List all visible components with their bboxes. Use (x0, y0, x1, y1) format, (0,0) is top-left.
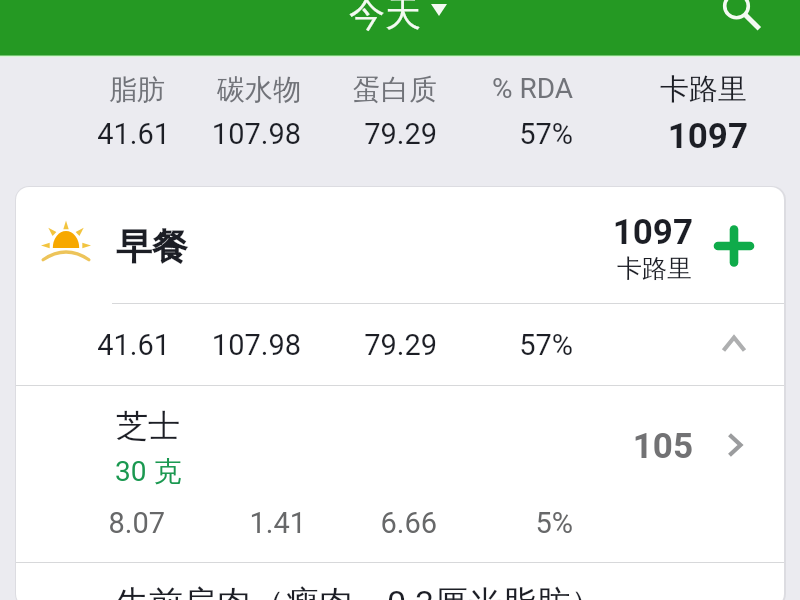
button[interactable] (16, 304, 784, 384)
button[interactable]: Search (706, 0, 767, 32)
staticText: 芝士 (116, 406, 180, 446)
staticText: 1097 (473, 212, 693, 253)
staticText: 79.29 (217, 117, 437, 151)
staticText: 107.98 (81, 117, 301, 151)
staticText: 5% (353, 506, 573, 540)
button[interactable]: Add food to breakfast (704, 216, 764, 276)
button[interactable] (16, 386, 784, 563)
staticText: 卡路里 (527, 71, 747, 108)
staticText: 8.07 (0, 506, 165, 540)
staticText: 1097 (528, 116, 748, 157)
staticText: 30 克 (115, 454, 182, 489)
staticText: 107.98 (81, 328, 301, 362)
staticText: % RDA (353, 72, 573, 105)
staticText: 脂肪 (0, 72, 165, 107)
staticText: 57% (353, 117, 573, 151)
staticText: 碳水物 (81, 72, 301, 107)
staticText: 41.61 (0, 328, 170, 362)
staticText: 早餐 (116, 224, 188, 269)
button[interactable]: Collapse breakfast (706, 316, 762, 372)
button[interactable]: Open 芝士 details (709, 419, 761, 471)
staticText: 41.61 (0, 117, 170, 151)
staticText: 卡路里 (472, 253, 692, 284)
staticText: 57% (353, 328, 573, 362)
button[interactable] (16, 187, 784, 302)
staticText: 1.41 (86, 506, 306, 540)
staticText: 105 (473, 426, 693, 467)
staticText: 牛前肩肉（瘦肉，0.3厘米脂肪） (115, 582, 605, 600)
staticText: 今天 (349, 0, 421, 36)
staticText: 6.66 (217, 506, 437, 540)
staticText: 79.29 (217, 328, 437, 362)
button[interactable]: 今天 (349, 0, 447, 36)
staticText: 蛋白质 (217, 72, 437, 107)
button[interactable] (16, 565, 784, 600)
